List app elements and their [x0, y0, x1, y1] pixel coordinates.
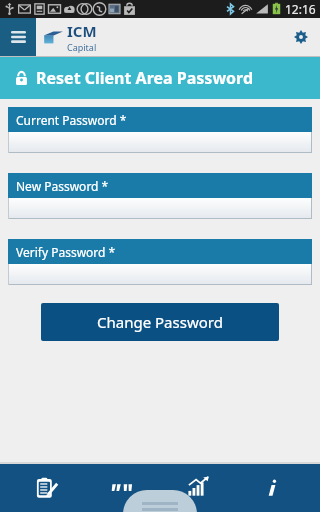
button[interactable]	[8, 198, 312, 219]
button[interactable]: Settings	[282, 18, 320, 56]
button[interactable]: Charts	[170, 465, 226, 511]
button[interactable]	[8, 132, 312, 153]
staticText: New Password *	[16, 178, 109, 194]
staticText: Verify Password *	[16, 244, 116, 260]
staticText: Capital	[67, 41, 97, 53]
button[interactable]: Change Password	[41, 303, 279, 341]
button[interactable]: Open account	[19, 465, 75, 511]
staticText: ICM	[67, 21, 97, 41]
staticText: Reset Client Area Password	[36, 67, 254, 89]
button[interactable]	[8, 264, 312, 285]
button[interactable]: Menu	[0, 18, 36, 56]
button[interactable]: Info	[245, 465, 301, 511]
button[interactable]: Quotes	[94, 465, 150, 511]
staticText: Current Password *	[16, 112, 127, 128]
staticText: 12:16	[285, 1, 316, 17]
staticText: Change Password	[97, 312, 223, 332]
